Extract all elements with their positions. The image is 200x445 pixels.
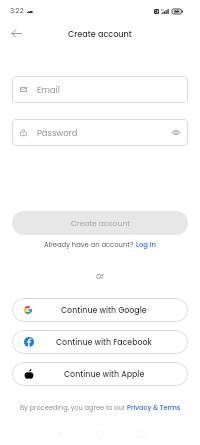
staticText: Create account [71,218,130,228]
staticText: Password [37,127,78,139]
staticText: 3:22 [10,6,24,16]
button[interactable]: Continue with Facebook [12,330,188,354]
button[interactable]: Email [12,76,188,103]
staticText: Continue with Facebook [56,337,152,348]
staticText: Continue with Apple [64,369,145,380]
button[interactable]: Privacy & Terms [127,403,181,412]
button[interactable]: Continue with Google [12,298,188,322]
button[interactable]: Back [7,24,25,42]
button[interactable]: Log in [136,240,156,250]
button[interactable]: Password [12,119,188,146]
staticText: Already have an account? [44,240,136,250]
button[interactable]: Continue with Apple [12,362,188,386]
staticText: Email [37,84,60,96]
staticText: or [0,270,200,281]
staticText: By proceeding, you agree to our [20,403,127,412]
staticText: Log in [136,240,156,250]
button[interactable]: Show password [171,128,181,137]
staticText: Privacy & Terms [127,403,181,412]
staticText: Create account [68,28,132,39]
button[interactable]: Create account [12,211,188,235]
staticText: Continue with Google [61,305,147,316]
